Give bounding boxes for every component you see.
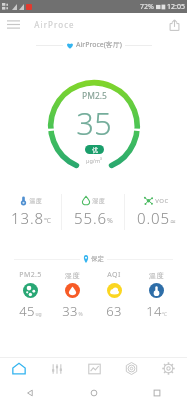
button[interactable]: Chart <box>76 357 113 380</box>
staticText: 湿度 <box>92 197 105 205</box>
staticText: AirProce <box>34 19 75 30</box>
button[interactable]: 温度 <box>135 268 177 322</box>
staticText: 温度 <box>149 271 164 280</box>
staticText: µg/m³ <box>86 157 102 164</box>
button[interactable]: Settings <box>150 357 187 380</box>
staticText: 温度 <box>29 197 42 205</box>
staticText: 保定 <box>91 255 104 263</box>
button[interactable]: 保定 <box>0 255 187 263</box>
staticText: 14 <box>146 302 162 320</box>
button[interactable]: VOC <box>125 190 187 234</box>
button[interactable]: 湿度 <box>51 268 93 322</box>
staticText: 45 <box>19 302 35 320</box>
staticText: 72% <box>140 2 154 12</box>
button[interactable]: 湿度 <box>62 190 124 234</box>
staticText: AQI <box>107 270 121 280</box>
button[interactable]: Home <box>0 357 38 380</box>
staticText: ug <box>35 311 42 318</box>
staticText: 33 <box>62 302 78 320</box>
button[interactable]: PM2.5 <box>10 268 51 322</box>
button[interactable]: Filter <box>113 357 150 380</box>
staticText: ℃ <box>162 311 167 318</box>
button[interactable]: 温度 <box>0 190 61 234</box>
staticText: PM2.5 <box>82 90 107 102</box>
staticText: 55.6 <box>74 208 107 228</box>
staticText: ≈ <box>170 218 176 226</box>
staticText: 63 <box>106 302 122 320</box>
button[interactable]: Share <box>161 13 187 36</box>
staticText: PM2.5 <box>19 270 42 280</box>
button[interactable]: AirProce(客厅) <box>36 40 152 50</box>
button[interactable]: Menu <box>0 13 26 36</box>
staticText: % <box>107 216 113 226</box>
button[interactable]: AQI <box>93 268 135 322</box>
button[interactable]: Controls <box>38 357 76 380</box>
staticText: 0.05 <box>137 208 170 228</box>
staticText: ℃ <box>44 216 51 226</box>
staticText: VOC <box>155 197 169 205</box>
staticText: 35 <box>76 102 112 144</box>
staticText: 13.8 <box>11 208 44 228</box>
staticText: 优 <box>92 146 98 154</box>
staticText: 12:05 <box>167 2 185 12</box>
staticText: % <box>78 311 83 318</box>
staticText: 湿度 <box>65 271 80 280</box>
staticText: AirProce(客厅) <box>76 40 122 50</box>
